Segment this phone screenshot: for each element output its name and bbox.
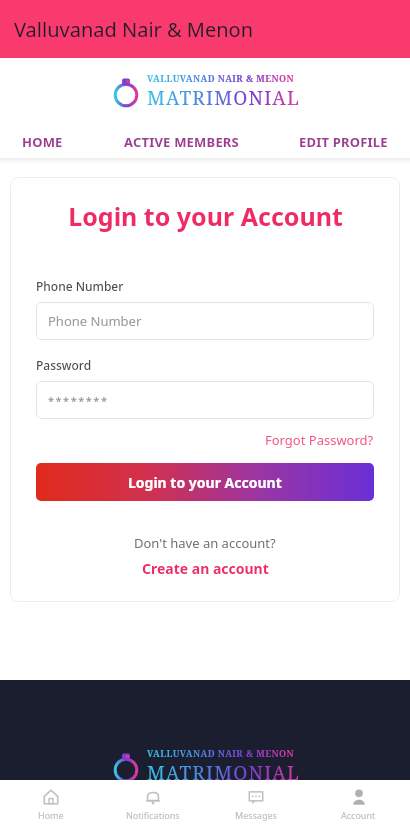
staticText: Valluvanad Nair & Menon [14,16,254,43]
staticText: Password [36,357,92,373]
staticText: MATRIMONIAL [147,85,300,111]
button[interactable]: HOME [22,129,63,155]
button[interactable]: EDIT PROFILE [299,129,388,155]
staticText: Messages [235,809,277,821]
button[interactable]: Forgot Password? [265,429,374,451]
staticText: MATRIMONIAL [147,760,300,786]
staticText: Forgot Password? [265,431,374,449]
button[interactable]: Login to your Account [36,463,374,501]
staticText: Create an account [142,559,269,578]
staticText: Notifications [126,809,180,821]
staticText: HOME [22,133,63,151]
staticText: VALLUVANAD NAIR & MENON [147,747,294,759]
staticText: VALLUVANAD NAIR & MENON [147,72,294,84]
button[interactable]: Notifications [102,784,204,825]
button[interactable]: Phone Number [36,302,374,340]
staticText: Phone Number [36,278,124,294]
staticText: ******** [48,393,109,408]
button[interactable]: Home [0,784,102,825]
staticText: Login to your Account [68,199,343,233]
button[interactable]: Account [307,784,410,825]
button[interactable]: Messages [204,784,307,825]
staticText: Don't have an account? [134,534,276,552]
button[interactable]: Create an account [142,557,269,580]
staticText: EDIT PROFILE [299,133,388,151]
button[interactable]: ACTIVE MEMBERS [124,129,239,155]
staticText: Home [38,809,64,821]
button[interactable]: ******** [36,381,374,419]
staticText: ACTIVE MEMBERS [124,133,239,151]
staticText: Account [341,809,376,821]
staticText: Login to your Account [128,473,282,492]
staticText: Phone Number [48,312,142,330]
